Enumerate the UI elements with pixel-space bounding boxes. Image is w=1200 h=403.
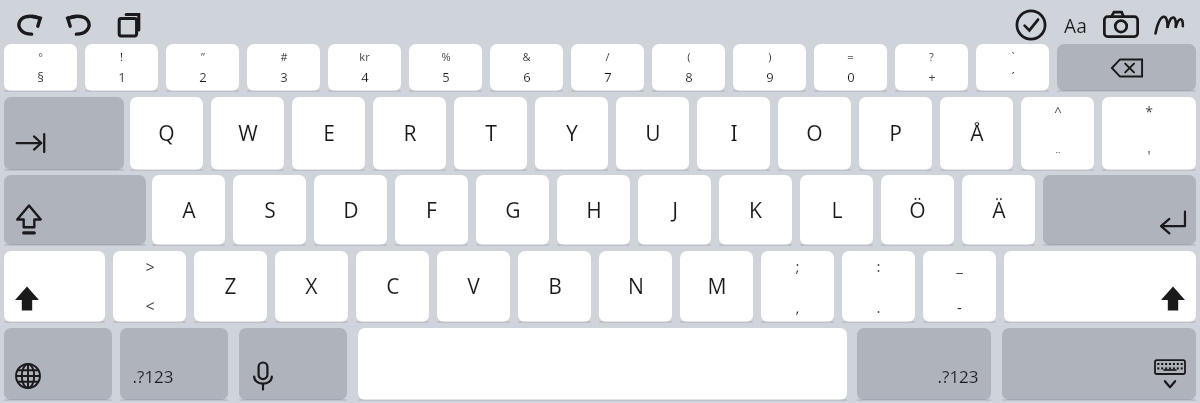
staticText: ¨ — [1054, 147, 1062, 165]
button[interactable]: R — [373, 97, 446, 170]
button[interactable]: Undo — [7, 4, 49, 46]
staticText: L — [831, 196, 843, 225]
button[interactable]: : — [842, 251, 915, 322]
staticText: % — [441, 49, 451, 64]
button[interactable]: W — [211, 97, 284, 170]
staticText: : — [876, 256, 881, 276]
button[interactable]: A — [152, 175, 225, 245]
button[interactable]: = — [814, 44, 887, 91]
staticText: V — [467, 272, 480, 301]
button[interactable]: > — [113, 251, 186, 322]
staticText: & — [522, 49, 531, 64]
staticText: S — [264, 196, 276, 225]
staticText: M — [707, 272, 727, 301]
button[interactable]: Done — [1010, 4, 1052, 46]
button[interactable]: ; — [761, 251, 834, 322]
button[interactable]: Aa — [1058, 12, 1092, 40]
button[interactable]: P — [859, 97, 932, 170]
staticText: § — [37, 68, 44, 86]
button[interactable]: Y — [535, 97, 608, 170]
button[interactable]: E — [292, 97, 365, 170]
button[interactable]: H — [557, 175, 630, 245]
staticText: N — [628, 272, 644, 301]
button[interactable]: Q — [130, 97, 203, 170]
button[interactable]: D — [314, 175, 387, 245]
button[interactable]: ^ — [1021, 97, 1094, 170]
button[interactable]: L — [800, 175, 873, 245]
button[interactable]: Backspace — [1057, 44, 1196, 91]
button[interactable]: Camera — [1100, 4, 1142, 46]
staticText: ” — [201, 49, 205, 64]
staticText: - — [957, 297, 962, 317]
button[interactable]: ° — [4, 44, 77, 91]
button[interactable]: G — [476, 175, 549, 245]
staticText: 0 — [847, 68, 855, 86]
staticText: Q — [158, 119, 175, 148]
button[interactable]: ? — [895, 44, 968, 91]
staticText: ' — [1147, 146, 1151, 165]
button[interactable]: S — [233, 175, 306, 245]
button[interactable]: F — [395, 175, 468, 245]
button[interactable]: / — [571, 44, 644, 91]
button[interactable]: Shift — [4, 251, 105, 322]
button[interactable]: K — [719, 175, 792, 245]
staticText: . — [876, 297, 881, 317]
staticText: 2 — [199, 68, 207, 86]
button[interactable]: C — [356, 251, 429, 322]
button[interactable]: Hide keyboard — [1002, 328, 1196, 400]
staticText: P — [889, 119, 902, 148]
button[interactable]: O — [778, 97, 851, 170]
button[interactable]: & — [490, 44, 563, 91]
button[interactable]: ) — [733, 44, 806, 91]
button[interactable]: N — [599, 251, 672, 322]
button[interactable]: I — [697, 97, 770, 170]
staticText: H — [586, 196, 602, 225]
button[interactable]: B — [518, 251, 591, 322]
button[interactable]: Switch keyboard — [4, 328, 112, 400]
button[interactable]: Paste — [108, 4, 150, 46]
button[interactable]: _ — [923, 251, 996, 322]
button[interactable]: ! — [85, 44, 158, 91]
button[interactable]: Tab — [4, 97, 124, 170]
staticText: T — [485, 119, 497, 148]
button[interactable]: V — [437, 251, 510, 322]
staticText: 3 — [280, 68, 288, 86]
staticText: ( — [687, 49, 691, 64]
staticText: Ö — [909, 196, 926, 225]
staticText: ; — [795, 256, 800, 276]
button[interactable]: .?123 — [120, 328, 228, 400]
button[interactable]: Ö — [881, 175, 954, 245]
button[interactable]: Z — [194, 251, 267, 322]
staticText: Å — [970, 119, 984, 148]
staticText: B — [548, 272, 562, 301]
button[interactable] — [358, 328, 847, 400]
button[interactable]: Return — [1043, 175, 1196, 245]
staticText: .?123 — [937, 365, 979, 388]
button[interactable]: X — [275, 251, 348, 322]
button[interactable]: ` — [976, 44, 1049, 91]
button[interactable]: ” — [166, 44, 239, 91]
staticText: > — [145, 256, 155, 278]
button[interactable]: Dictate — [239, 328, 347, 400]
button[interactable]: J — [638, 175, 711, 245]
button[interactable]: Ä — [962, 175, 1035, 245]
button[interactable]: # — [247, 44, 320, 91]
staticText: 5 — [442, 68, 450, 86]
button[interactable]: kr — [328, 44, 401, 91]
button[interactable]: * — [1102, 97, 1196, 170]
button[interactable]: Redo — [59, 4, 101, 46]
staticText: Y — [566, 119, 578, 148]
button[interactable]: U — [616, 97, 689, 170]
staticText: ´ — [1011, 68, 1015, 86]
button[interactable]: Shift — [1004, 251, 1196, 322]
button[interactable]: Scribble — [1148, 4, 1190, 46]
button[interactable]: Å — [940, 97, 1013, 170]
staticText: F — [426, 196, 437, 225]
staticText: 7 — [604, 68, 612, 86]
button[interactable]: .?123 — [857, 328, 991, 400]
button[interactable]: T — [454, 97, 527, 170]
button[interactable]: ( — [652, 44, 725, 91]
button[interactable]: % — [409, 44, 482, 91]
button[interactable]: M — [680, 251, 753, 322]
button[interactable]: Caps lock — [4, 175, 146, 245]
